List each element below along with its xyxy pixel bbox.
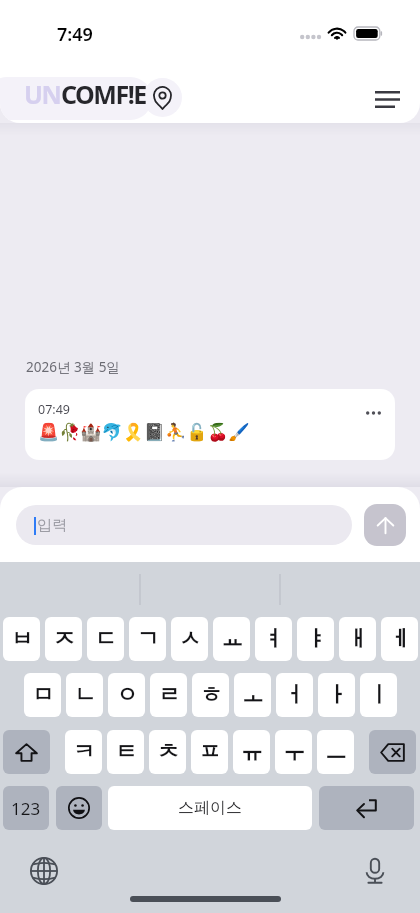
staticText: ㅐ [347, 625, 369, 653]
staticText: ㅋ [73, 738, 95, 766]
staticText: ㅡ [325, 738, 347, 766]
staticText: 123 [11, 797, 41, 820]
staticText: ㅇ [116, 681, 138, 709]
staticText: ㅛ [221, 625, 243, 653]
staticText: ㄹ [158, 681, 180, 709]
button[interactable]: ㅗ [234, 673, 271, 717]
staticText: ㅊ [157, 738, 179, 766]
staticText: 07:49 [38, 401, 70, 418]
button[interactable]: ㅁ [24, 673, 61, 717]
button[interactable]: Backspace [369, 730, 416, 774]
button[interactable]: 123 [3, 786, 49, 830]
button[interactable]: ㄱ [129, 617, 166, 661]
button[interactable]: ㄹ [150, 673, 187, 717]
staticText: ㅎ [200, 681, 222, 709]
button[interactable]: ㅍ [191, 730, 228, 774]
button[interactable]: Menu [368, 80, 406, 118]
staticText: ㅓ [284, 681, 306, 709]
button[interactable]: Change language [26, 853, 62, 889]
button[interactable]: ㅊ [149, 730, 186, 774]
button[interactable]: ㄷ [87, 617, 124, 661]
staticText: ㅁ [32, 681, 54, 709]
staticText: ㅂ [11, 625, 33, 653]
staticText: ㄴ [74, 681, 96, 709]
button[interactable]: ㅓ [276, 673, 313, 717]
button[interactable]: ㅑ [297, 617, 334, 661]
staticText: ㅑ [305, 625, 327, 653]
button[interactable]: ㅎ [192, 673, 229, 717]
button[interactable]: More options [362, 402, 384, 424]
button[interactable]: ㅔ [381, 617, 418, 661]
button[interactable]: ㅠ [233, 730, 270, 774]
staticText: 🚨🥀🏰🐬🎗️📓⛹️🔓🍒🖌️ [38, 422, 250, 442]
staticText: ㅗ [242, 681, 264, 709]
staticText: ㅕ [263, 625, 285, 653]
button[interactable]: UN [0, 77, 152, 120]
staticText: 스페이스 [178, 798, 242, 818]
staticText: 입력 [37, 516, 67, 535]
staticText: ㅍ [199, 738, 221, 766]
staticText: 2026년 3월 5일 [26, 358, 120, 376]
button[interactable]: Voice input [357, 853, 393, 889]
button[interactable]: Shift [3, 730, 50, 774]
staticText: UN [24, 77, 61, 111]
staticText: ㅈ [53, 625, 75, 653]
staticText: ㄱ [137, 625, 159, 653]
button[interactable]: ㅣ [360, 673, 397, 717]
button[interactable]: ㅈ [45, 617, 82, 661]
button[interactable]: 스페이스 [108, 786, 312, 830]
button[interactable]: 07:49 [25, 389, 395, 460]
staticText: ㅣ [368, 681, 390, 709]
staticText: ㅏ [326, 681, 348, 709]
button[interactable]: ㅜ [275, 730, 312, 774]
staticText: ㅌ [115, 738, 137, 766]
button[interactable]: Emoji keyboard [56, 786, 102, 830]
staticText: 7:49 [57, 22, 93, 47]
staticText: ㅔ [389, 625, 411, 653]
button[interactable]: ㅂ [3, 617, 40, 661]
button[interactable]: ㄴ [66, 673, 103, 717]
button[interactable]: 입력 [16, 505, 352, 545]
button[interactable]: ㅋ [65, 730, 102, 774]
button[interactable]: ㅏ [318, 673, 355, 717]
button[interactable]: ㅛ [213, 617, 250, 661]
button[interactable]: Enter [319, 786, 414, 830]
button[interactable]: Location [143, 78, 182, 117]
staticText: ㅠ [241, 738, 263, 766]
button[interactable]: ㅕ [255, 617, 292, 661]
button[interactable]: ㅇ [108, 673, 145, 717]
staticText: COMF!E [61, 77, 146, 111]
button[interactable]: ㅅ [171, 617, 208, 661]
staticText: ㅅ [179, 625, 201, 653]
staticText: ㄷ [95, 625, 117, 653]
button[interactable]: ㅌ [107, 730, 144, 774]
staticText: ㅜ [283, 738, 305, 766]
button[interactable]: ㅐ [339, 617, 376, 661]
button[interactable]: Send [364, 504, 406, 546]
button[interactable]: ㅡ [317, 730, 354, 774]
